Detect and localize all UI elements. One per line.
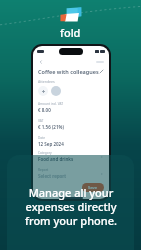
button[interactable]: Report <box>33 166 109 183</box>
staticText: Manage all your expenses directly from y… <box>25 185 117 228</box>
button[interactable]: VAT <box>33 117 109 134</box>
staticText: Coffee with colleagues <box>38 68 99 75</box>
button[interactable]: Save <box>82 183 104 192</box>
staticText: fold <box>60 25 81 40</box>
staticText: Select report <box>38 173 67 179</box>
button[interactable]: More <box>96 61 104 63</box>
button[interactable]: Category <box>33 149 109 166</box>
staticText: Report <box>38 168 49 172</box>
staticText: Attendees <box>38 79 55 84</box>
staticText: Date <box>38 136 46 140</box>
staticText: Category <box>38 151 52 155</box>
staticText: 12 Sep 2024 <box>38 141 64 147</box>
button[interactable]: Edit <box>99 69 104 74</box>
staticText: Save <box>88 185 98 190</box>
button[interactable]: Add attendee <box>38 86 48 96</box>
staticText: € 8.00 <box>38 107 51 113</box>
staticText: Food and drinks <box>38 156 74 162</box>
button[interactable]: Amount incl. VAT <box>33 100 109 117</box>
staticText: € 1.56 (21%) <box>38 124 64 130</box>
staticText: VAT <box>38 119 44 123</box>
button[interactable]: Back <box>38 59 44 65</box>
button[interactable]: Date <box>33 134 109 149</box>
staticText: Amount incl. VAT <box>38 102 64 106</box>
